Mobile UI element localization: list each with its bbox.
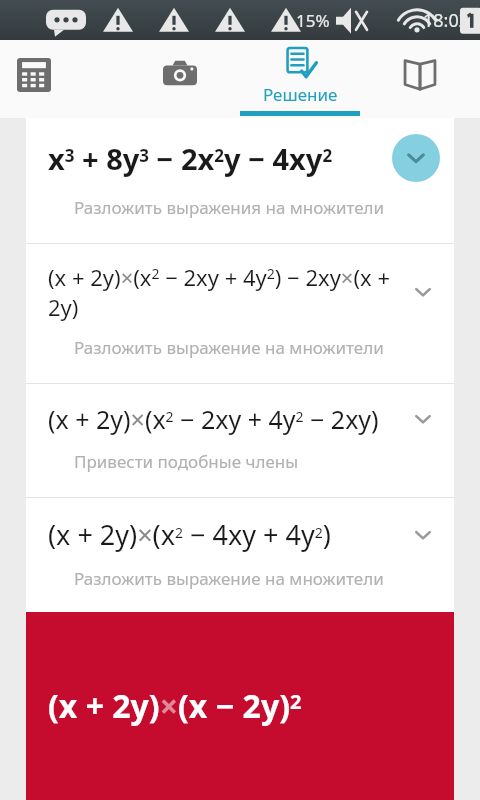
button[interactable]: (x + 2y)×(x2 − 2xy + 4y2) − 2xy×(x + 2y) [26, 244, 454, 384]
staticText: Разложить выражение на множители [74, 567, 384, 590]
staticText: (x + 2y)×(x2 − 4xy + 4y2) [48, 516, 331, 553]
button[interactable]: (x + 2y)×(x − 2y)2 [26, 612, 454, 800]
button[interactable]: Развернуть [406, 518, 440, 552]
staticText: Привести подобные члены [74, 450, 299, 473]
button[interactable]: Камера [120, 40, 240, 118]
button[interactable]: Калькулятор [0, 40, 120, 118]
button[interactable]: (x + 2y)×(x2 − 4xy + 4y2) [26, 498, 454, 612]
staticText: Разложить выражения на множители [74, 196, 385, 219]
staticText: (x + 2y)×(x2 − 2xy + 4y2 − 2xy) [48, 402, 379, 436]
staticText: 15% [296, 9, 330, 32]
button[interactable]: Развернуть [406, 275, 440, 309]
button[interactable]: Учебник [360, 40, 480, 118]
button[interactable]: x3 + 8y3 − 2x2y − 4xy2 [26, 118, 454, 244]
button[interactable]: (x + 2y)×(x2 − 2xy + 4y2 − 2xy) [26, 384, 454, 498]
staticText: x3 + 8y3 − 2x2y − 4xy2 [48, 139, 333, 178]
staticText: Разложить выражение на множители [74, 336, 384, 359]
staticText: 18:02 [423, 8, 470, 33]
staticText: (x + 2y)×(x − 2y)2 [48, 684, 302, 728]
button[interactable]: Развернуть [406, 402, 440, 436]
button[interactable]: Развернуть [392, 134, 440, 182]
button[interactable]: Решение [240, 40, 360, 118]
staticText: Решение [263, 83, 338, 106]
staticText: (x + 2y)×(x2 − 2xy + 4y2) − 2xy×(x + 2y) [48, 262, 406, 322]
